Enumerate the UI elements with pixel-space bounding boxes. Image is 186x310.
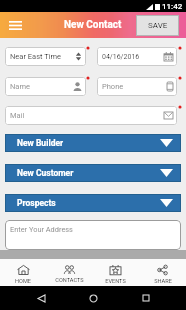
staticText: Prospects xyxy=(17,198,160,208)
button[interactable]: EVENTS xyxy=(92,259,139,286)
staticText: HOME xyxy=(15,278,31,285)
button[interactable]: Phone xyxy=(97,77,177,96)
button[interactable]: Mail xyxy=(5,106,177,125)
button[interactable]: Open navigation menu xyxy=(6,16,25,35)
staticText: Near East Time xyxy=(10,52,75,61)
button[interactable]: New Builder xyxy=(5,134,181,152)
button[interactable]: New Customer xyxy=(5,164,181,182)
button[interactable]: Back xyxy=(29,286,53,310)
staticText: Mail xyxy=(10,111,164,120)
staticText: Enter Your Address xyxy=(10,225,73,234)
staticText: 11:42 xyxy=(162,2,183,11)
staticText: EVENTS xyxy=(105,278,126,285)
staticText: New Contact xyxy=(64,19,122,31)
button[interactable]: Near East Time xyxy=(5,47,86,66)
button[interactable]: Recent apps xyxy=(134,286,158,310)
staticText: CONTACTS xyxy=(55,277,84,284)
button[interactable]: Name xyxy=(5,77,86,96)
button[interactable]: 04/16/2016 xyxy=(97,47,177,66)
button[interactable]: CONTACTS xyxy=(46,259,92,286)
staticText: Phone xyxy=(102,82,167,91)
staticText: New Customer xyxy=(17,168,160,178)
button[interactable]: HOME xyxy=(0,259,46,286)
staticText: SAVE xyxy=(148,21,168,30)
button[interactable]: Enter Your Address xyxy=(5,220,181,250)
staticText: Name xyxy=(10,82,73,91)
button[interactable]: Home xyxy=(81,286,105,310)
staticText: SHARE xyxy=(154,278,172,285)
staticText: 04/16/2016 xyxy=(102,53,164,61)
staticText: New Builder xyxy=(17,138,160,148)
button[interactable]: Prospects xyxy=(5,194,181,212)
button[interactable]: SHARE xyxy=(139,259,186,286)
button[interactable]: SAVE xyxy=(136,15,179,36)
